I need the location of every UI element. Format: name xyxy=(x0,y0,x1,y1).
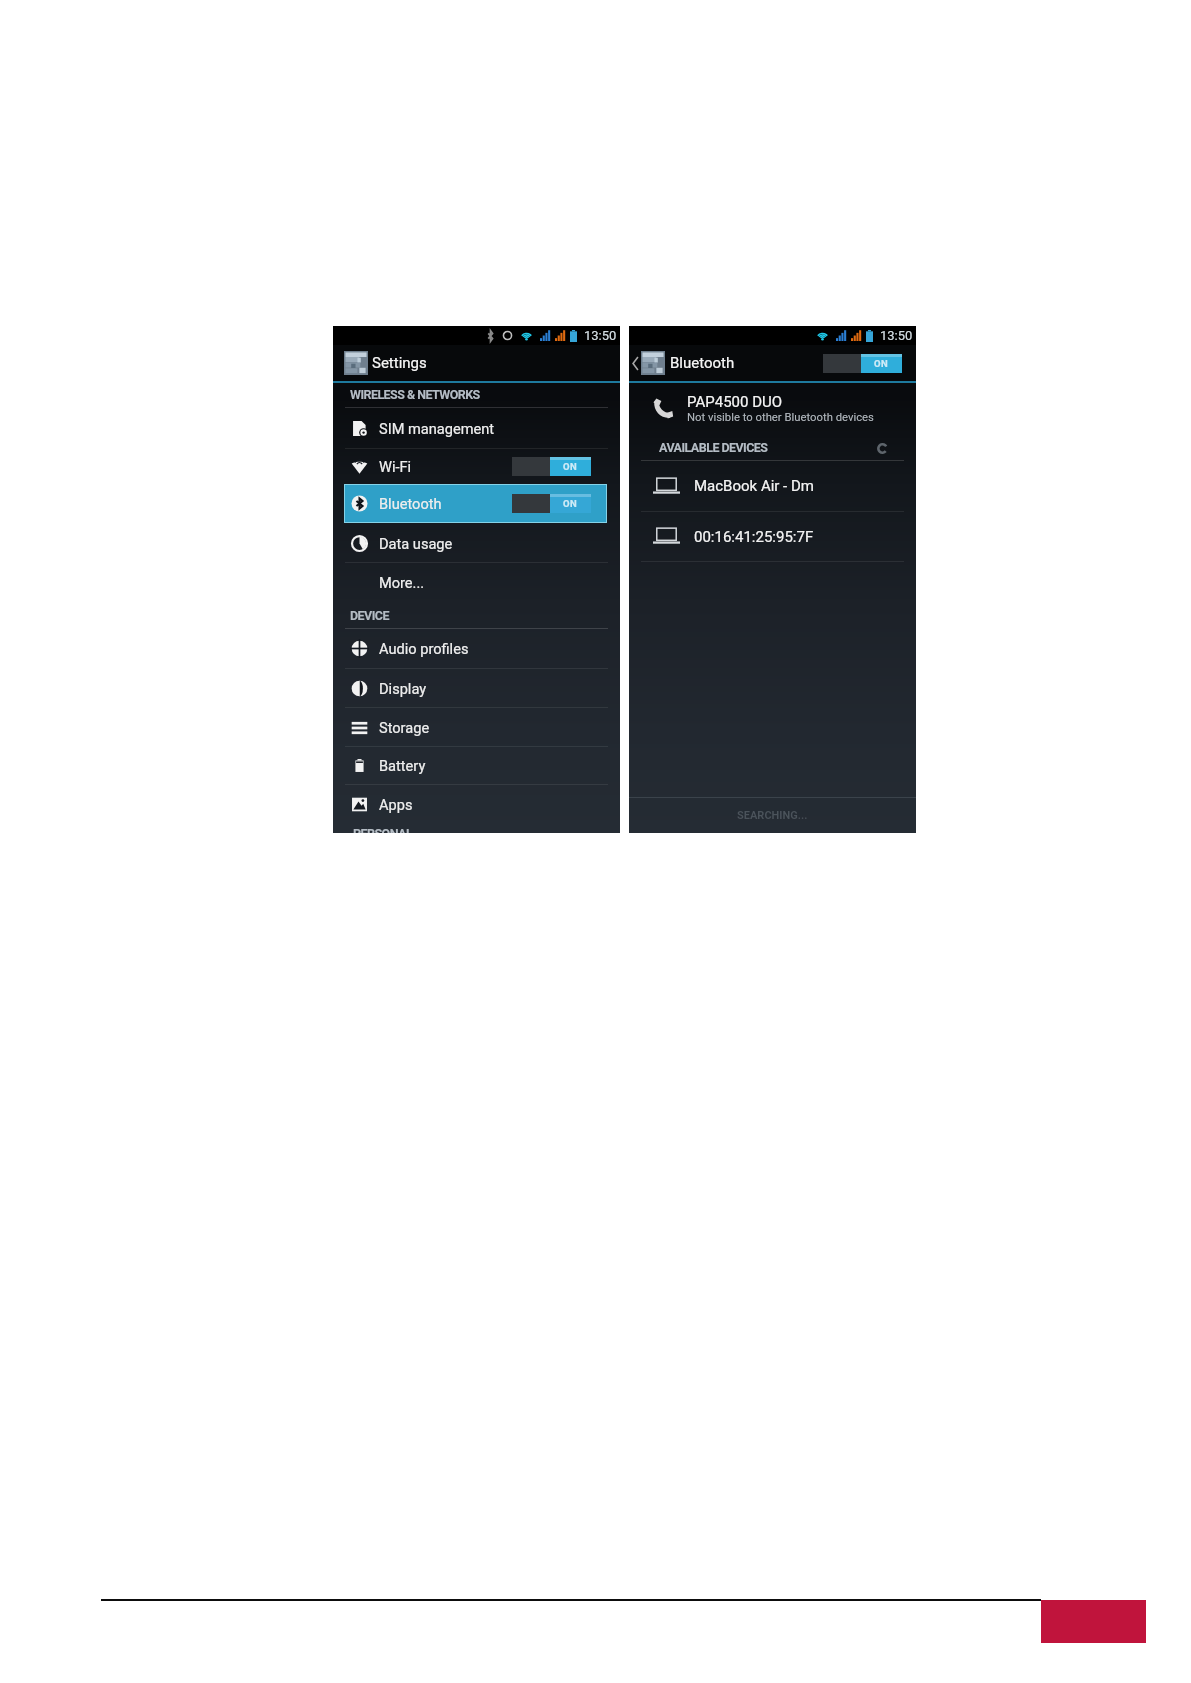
button[interactable]: Display xyxy=(351,669,591,707)
staticText: AVAILABLE DEVICES xyxy=(659,440,768,455)
button[interactable]: SEARCHING... xyxy=(629,798,916,833)
staticText: DEVICE xyxy=(350,608,389,623)
button[interactable]: Toggle on xyxy=(512,457,591,476)
staticText: 00:16:41:25:95:7F xyxy=(694,528,814,546)
staticText: 13:50 xyxy=(584,328,617,343)
button[interactable]: Wi-Fi xyxy=(351,449,591,483)
button[interactable]: SIM management xyxy=(351,408,591,448)
staticText: PAP4500 DUO xyxy=(687,393,783,411)
staticText: Data usage xyxy=(379,535,453,552)
staticText: ON xyxy=(563,498,578,509)
staticText: SIM management xyxy=(379,420,495,437)
staticText: Storage xyxy=(379,719,430,736)
button[interactable]: 00:16:41:25:95:7F xyxy=(629,512,916,561)
button[interactable]: Storage xyxy=(351,708,591,746)
button[interactable]: Settings xyxy=(333,345,620,381)
staticText: ON xyxy=(874,358,889,369)
button[interactable]: Bluetooth xyxy=(351,484,591,523)
staticText: Settings xyxy=(372,354,427,372)
button[interactable]: Apps xyxy=(351,785,591,823)
staticText: Bluetooth xyxy=(670,354,735,372)
button[interactable]: Toggle on xyxy=(512,494,591,513)
button[interactable]: MacBook Air - Dm xyxy=(629,461,916,511)
staticText: Audio profiles xyxy=(379,640,469,657)
staticText: Bluetooth xyxy=(379,495,442,512)
staticText: Apps xyxy=(379,796,413,813)
button[interactable]: More... xyxy=(351,563,591,602)
button[interactable]: Back xyxy=(630,353,640,373)
staticText: ON xyxy=(563,461,578,472)
button[interactable]: Audio profiles xyxy=(351,629,591,668)
staticText: 13:50 xyxy=(880,328,913,343)
staticText: PERSONAL xyxy=(353,826,413,833)
staticText: Not visible to other Bluetooth devices xyxy=(687,411,874,424)
staticText: Battery xyxy=(379,757,426,774)
staticText: SEARCHING... xyxy=(737,809,808,822)
staticText: More... xyxy=(379,574,425,591)
button[interactable]: Battery xyxy=(351,747,591,784)
staticText: Display xyxy=(379,680,427,697)
button[interactable]: Toggle on xyxy=(823,354,902,373)
staticText: WIRELESS & NETWORKS xyxy=(350,387,480,402)
button[interactable]: PAP4500 DUO xyxy=(629,383,916,434)
button[interactable]: Data usage xyxy=(351,524,591,562)
staticText: Wi-Fi xyxy=(379,458,412,475)
staticText: MacBook Air - Dm xyxy=(694,477,814,495)
